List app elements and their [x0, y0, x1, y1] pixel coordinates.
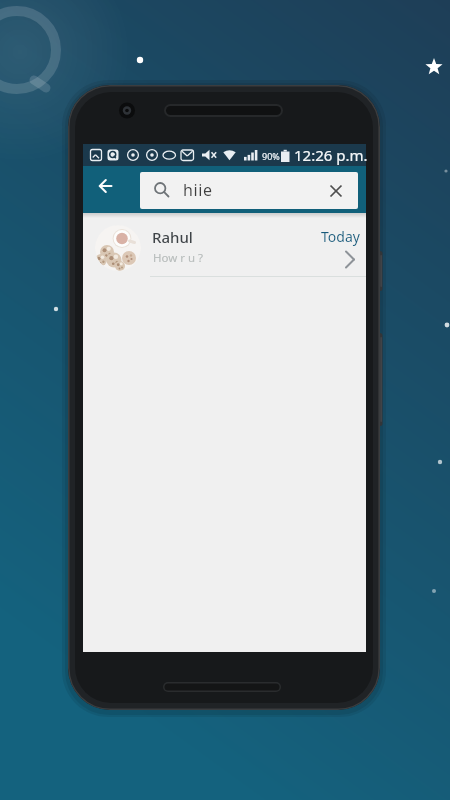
button[interactable] — [314, 172, 358, 209]
staticText: Rahul — [152, 227, 193, 247]
staticText: 90% — [262, 150, 280, 162]
staticText: 12:26 p.m. — [294, 145, 368, 165]
staticText: hiie — [183, 179, 213, 201]
staticText: How r u ? — [153, 250, 204, 266]
button[interactable] — [85, 168, 125, 204]
button[interactable]: hiie — [140, 172, 358, 209]
staticText: Today — [321, 227, 360, 246]
button[interactable]: Rahul — [83, 213, 366, 277]
